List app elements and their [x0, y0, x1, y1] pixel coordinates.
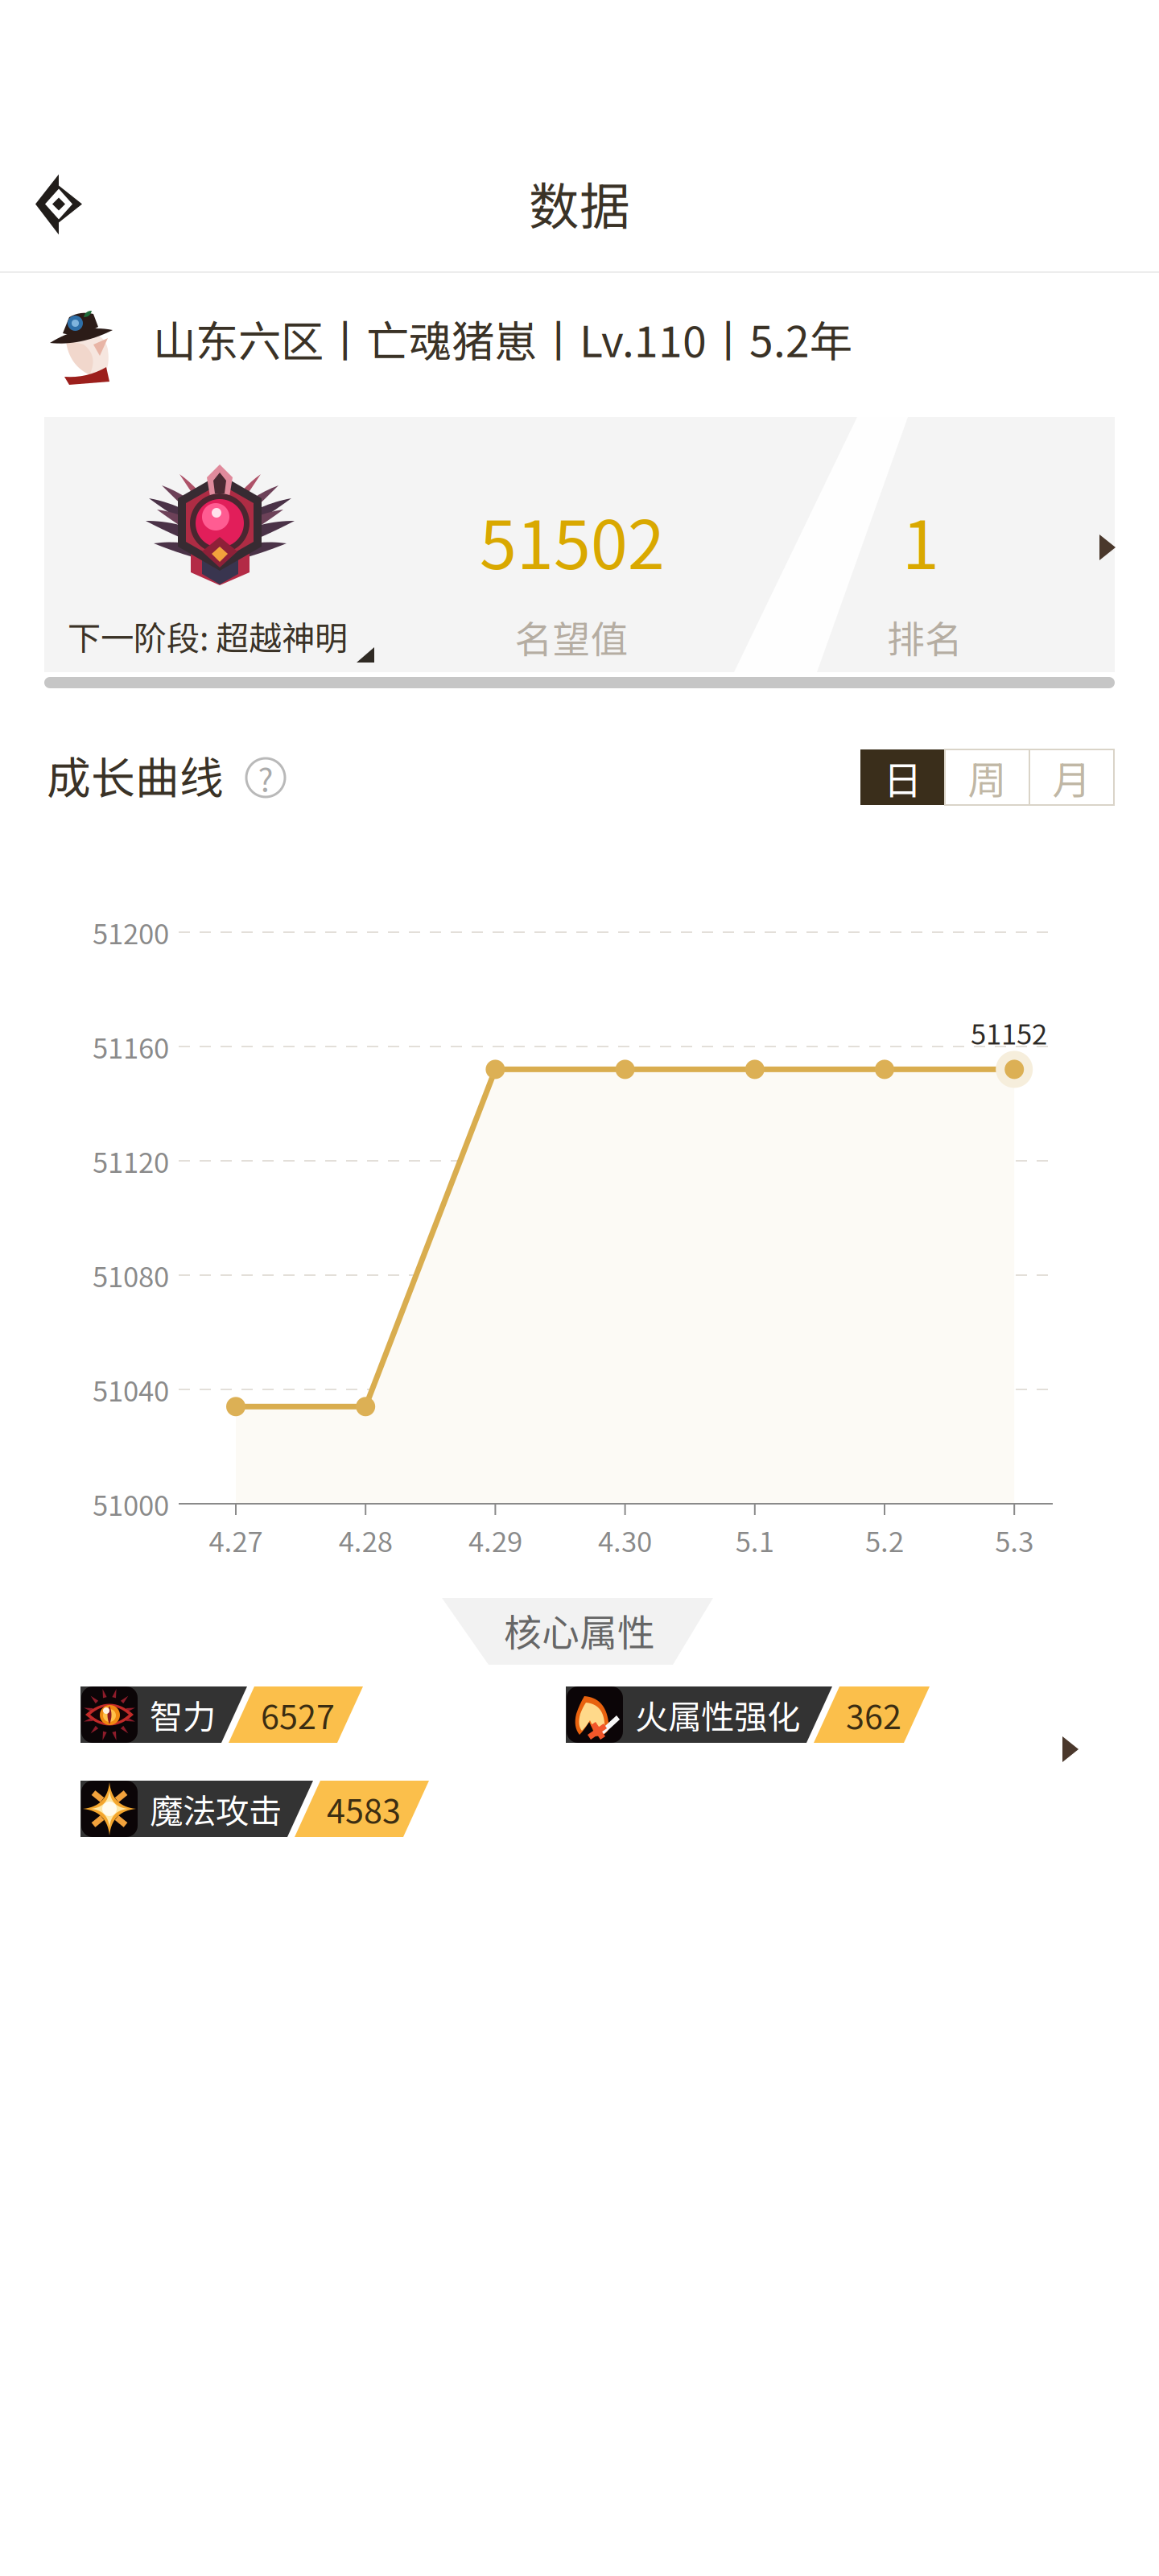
staticText: 362: [846, 1691, 901, 1739]
button[interactable]: More attributes: [1062, 1736, 1098, 1781]
staticText: 火属性强化: [635, 1691, 800, 1739]
staticText: 5.3: [995, 1520, 1034, 1560]
staticText: 核心属性: [504, 1603, 655, 1657]
staticText: 周: [968, 749, 1006, 805]
staticText: 51160: [93, 1026, 169, 1067]
staticText: 成长曲线: [47, 743, 224, 807]
staticText: 51502: [480, 492, 665, 588]
staticText: 5.2: [865, 1520, 904, 1560]
button[interactable]: Back: [10, 156, 107, 253]
staticText: 日: [883, 749, 922, 805]
staticText: ?: [258, 754, 273, 801]
staticText: 智力: [150, 1691, 216, 1739]
staticText: 51200: [93, 912, 169, 952]
button[interactable]: 火属性强化: [566, 1686, 933, 1743]
staticText: 4583: [327, 1785, 401, 1833]
staticText: 魔法攻击: [150, 1785, 282, 1833]
staticText: 51080: [93, 1255, 169, 1295]
staticText: 51120: [93, 1141, 169, 1181]
button[interactable]: 周: [945, 749, 1029, 805]
button[interactable]: 月: [1029, 749, 1114, 805]
staticText: 月: [1052, 749, 1091, 805]
button[interactable]: 智力: [80, 1686, 366, 1743]
staticText: 排名: [887, 610, 963, 664]
staticText: 1: [902, 492, 939, 588]
staticText: 4.27: [209, 1520, 263, 1560]
staticText: 数据: [529, 166, 630, 239]
staticText: 51000: [93, 1484, 169, 1524]
staticText: 山东六区丨亡魂猪崽丨Lv.110丨5.2年: [153, 308, 852, 370]
button[interactable]: More stats: [1099, 535, 1135, 580]
button[interactable]: 日: [860, 749, 945, 805]
staticText: 4.29: [468, 1520, 522, 1560]
staticText: 51040: [93, 1369, 169, 1410]
button[interactable]: Help: [243, 755, 288, 800]
staticText: 4.28: [339, 1520, 393, 1560]
staticText: 5.1: [735, 1520, 774, 1560]
staticText: 6527: [261, 1691, 335, 1739]
staticText: 名望值: [515, 610, 628, 664]
staticText: 下一阶段: 超越神明: [68, 612, 348, 660]
staticText: 4.30: [598, 1520, 652, 1560]
staticText: 51152: [971, 1012, 1047, 1053]
button[interactable]: 魔法攻击: [80, 1781, 432, 1837]
